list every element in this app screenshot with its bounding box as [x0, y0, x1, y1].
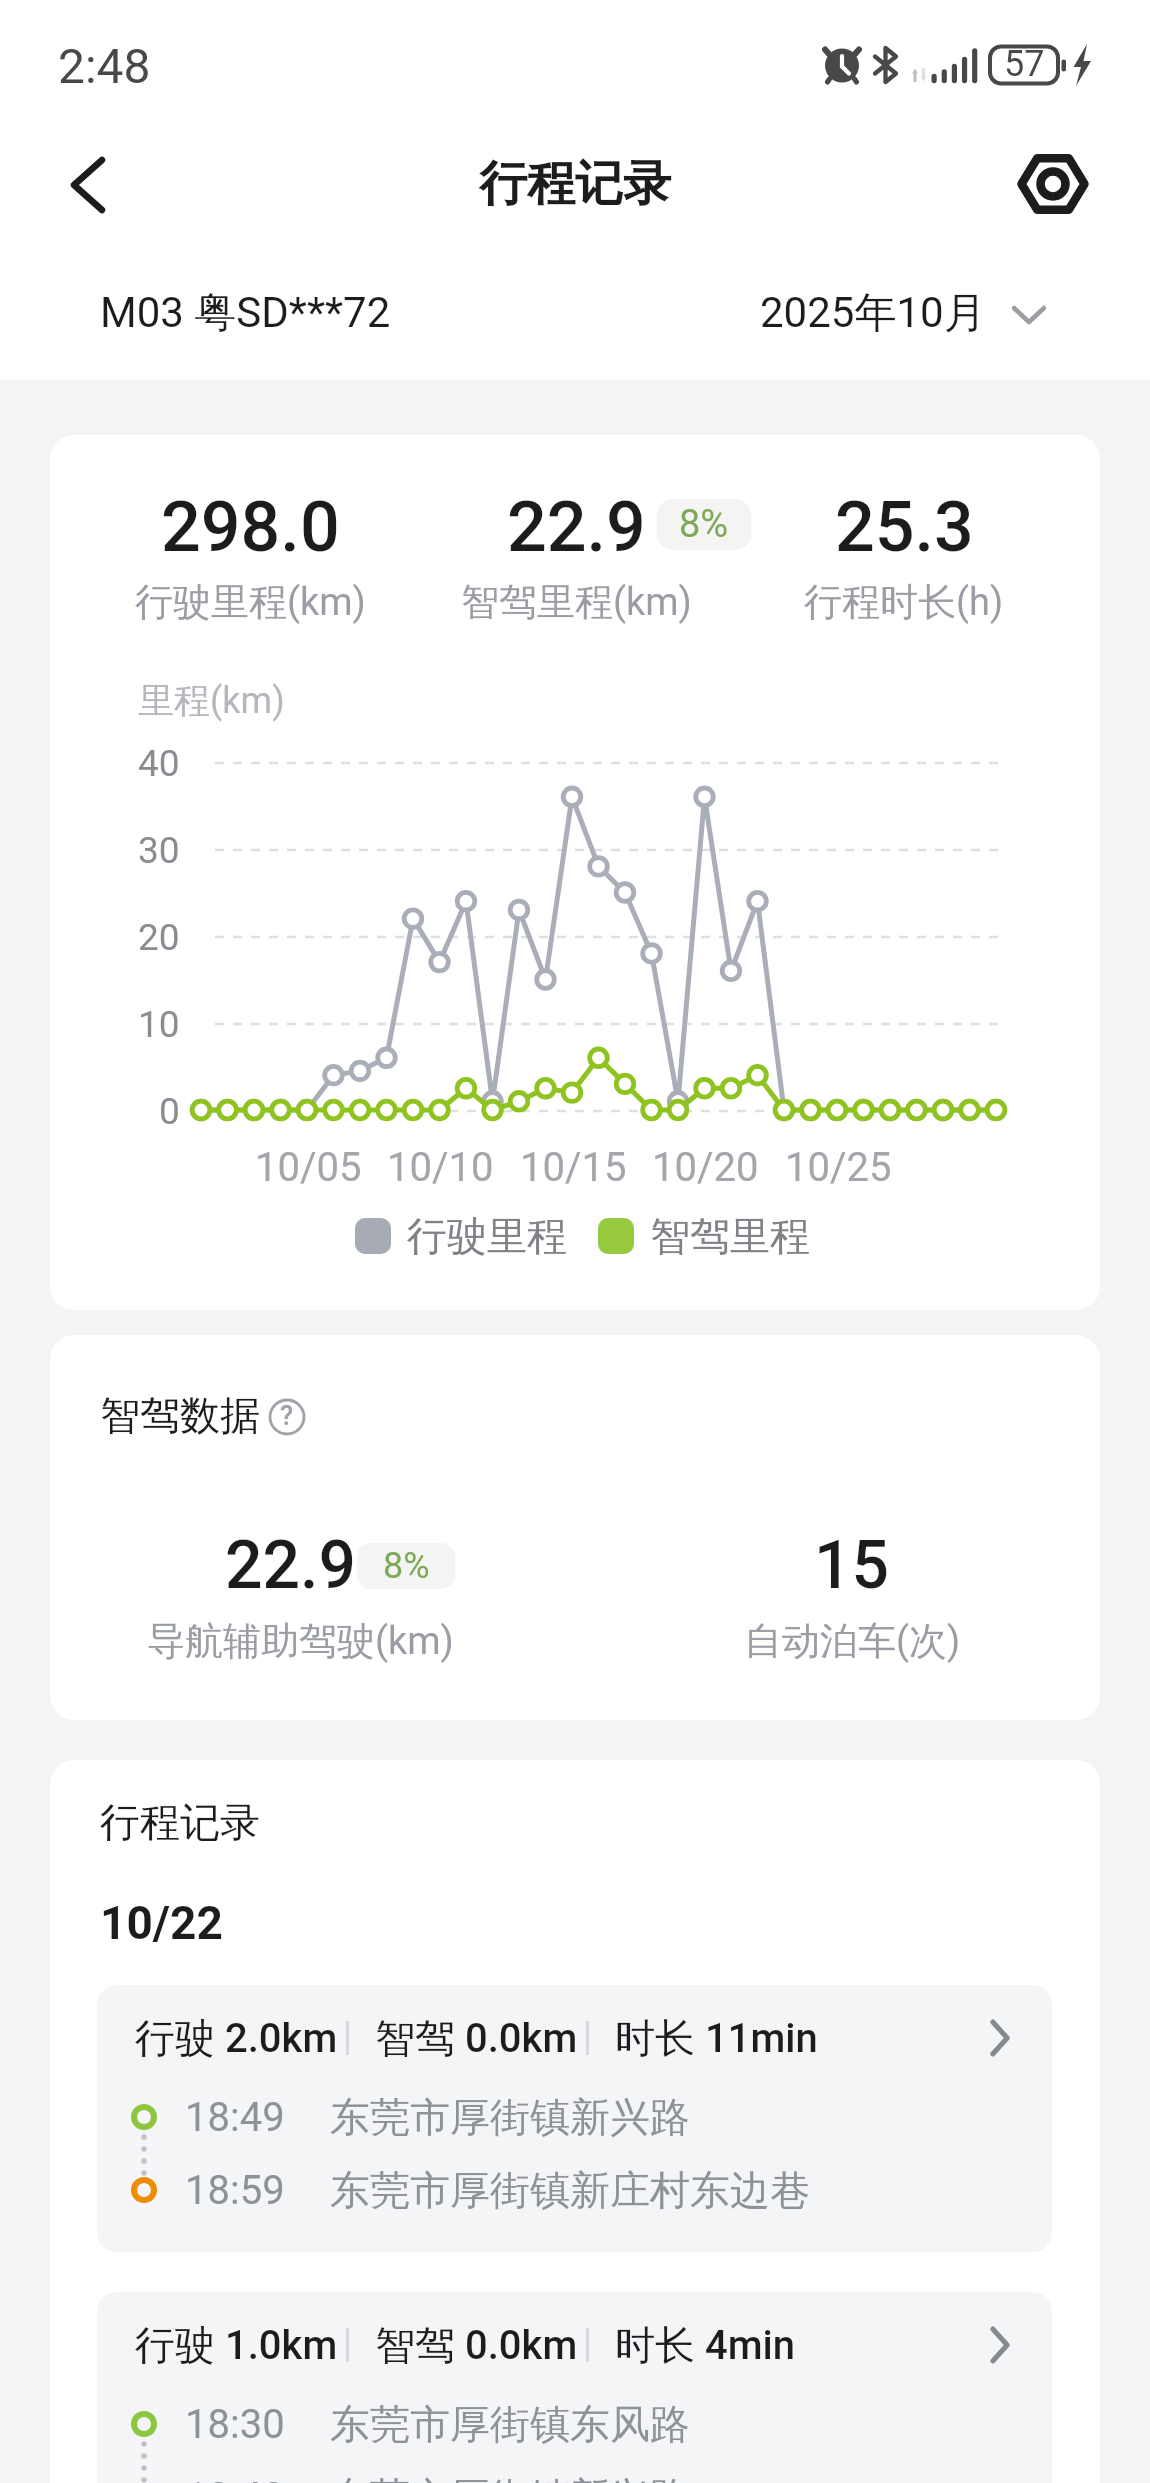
- staticText: 18:40: [185, 2474, 285, 2483]
- staticText: 10/10: [387, 1144, 494, 1191]
- button[interactable]: [1012, 145, 1094, 225]
- staticText: 57: [1004, 43, 1045, 85]
- staticText: 18:30: [185, 2401, 285, 2448]
- staticText: 20: [138, 916, 180, 959]
- staticText: 东莞市厚街镇东风路: [330, 2399, 690, 2449]
- staticText: ?: [280, 1400, 294, 1432]
- staticText: 10/15: [520, 1144, 627, 1191]
- staticText: 22.9: [507, 486, 646, 568]
- staticText: 智驾数据: [100, 1390, 260, 1440]
- staticText: 0: [159, 1090, 180, 1133]
- staticText: 10: [138, 1003, 180, 1046]
- staticText: 智驾里程: [650, 1211, 810, 1261]
- button[interactable]: 2025年10月: [760, 263, 1060, 363]
- staticText: 时长 4min: [615, 2320, 795, 2370]
- staticText: M03 粤SD***72: [100, 287, 391, 340]
- staticText: 18:49: [185, 2094, 285, 2141]
- staticText: 行程时长(h): [804, 578, 1004, 626]
- staticText: 智驾 0.0km: [375, 2320, 578, 2370]
- button[interactable]: 行驶 2.0km: [97, 1985, 1052, 2252]
- staticText: 行程记录: [100, 1797, 260, 1847]
- staticText: 10/20: [652, 1144, 759, 1191]
- staticText: 10/22: [100, 1896, 223, 1950]
- staticText: 东莞市厚街镇新庄村东边巷: [330, 2165, 810, 2215]
- button[interactable]: 行驶 1.0km: [97, 2292, 1052, 2483]
- staticText: 东莞市厚街镇新兴路: [330, 2092, 690, 2142]
- staticText: 22.9: [225, 1527, 356, 1604]
- staticText: 行驶 2.0km: [135, 2013, 338, 2063]
- staticText: 15: [814, 1527, 890, 1604]
- staticText: 行驶 1.0km: [135, 2320, 338, 2370]
- staticText: 18:59: [185, 2167, 285, 2214]
- staticText: 行驶里程(km): [135, 578, 366, 626]
- staticText: 40: [138, 742, 180, 785]
- staticText: 智驾里程(km): [461, 578, 692, 626]
- staticText: 8%: [383, 1545, 430, 1587]
- button[interactable]: [50, 150, 120, 220]
- staticText: 8%: [679, 502, 729, 547]
- staticText: 东莞市厚街镇新兴路: [330, 2472, 690, 2483]
- staticText: 2025年10月: [760, 287, 986, 340]
- staticText: 时长 11min: [615, 2013, 818, 2063]
- staticText: 30: [138, 829, 180, 872]
- staticText: 2:48: [58, 38, 151, 94]
- staticText: 行驶里程: [407, 1211, 567, 1261]
- staticText: 智驾 0.0km: [375, 2013, 578, 2063]
- staticText: 自动泊车(次): [744, 1617, 961, 1665]
- staticText: 导航辅助驾驶(km): [147, 1617, 454, 1665]
- staticText: 10/25: [785, 1144, 892, 1191]
- staticText: 298.0: [161, 486, 340, 568]
- staticText: 里程(km): [138, 678, 285, 723]
- staticText: 25.3: [835, 486, 974, 568]
- staticText: 行程记录: [479, 154, 671, 214]
- staticText: 10/05: [255, 1144, 362, 1191]
